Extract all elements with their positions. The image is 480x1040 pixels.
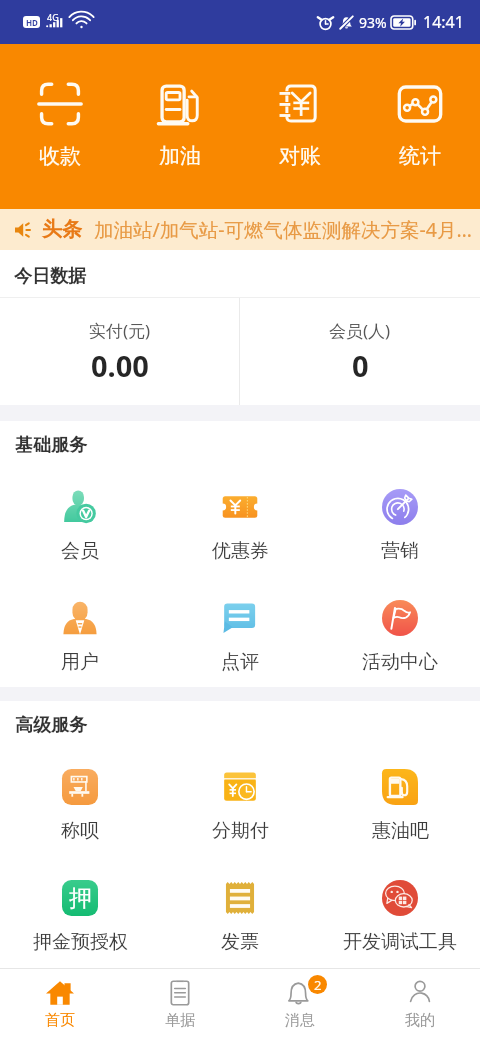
staticText: 加油 (159, 143, 201, 169)
staticText: 高级服务 (15, 714, 87, 737)
button[interactable]: 对账 (240, 44, 360, 209)
staticText: 头条 (42, 217, 82, 242)
staticText: 押金预授权 (33, 930, 128, 954)
button[interactable]: 用户 (0, 576, 160, 687)
button[interactable]: 统计 (360, 44, 480, 209)
button[interactable]: 首页 (0, 969, 120, 1040)
staticText: 开发调试工具 (343, 930, 457, 954)
button[interactable]: 押 (0, 856, 160, 967)
staticText: 活动中心 (362, 650, 438, 674)
button[interactable]: 头条 (0, 209, 480, 250)
button[interactable]: 会员(人) (240, 298, 480, 405)
button[interactable]: 开发调试工具 (320, 856, 480, 967)
staticText: 发票 (221, 930, 259, 954)
staticText: 优惠券 (212, 539, 269, 563)
staticText: 对账 (279, 143, 321, 169)
staticText: 用户 (61, 650, 99, 674)
staticText: 基础服务 (15, 434, 87, 457)
button[interactable]: 加油 (120, 44, 240, 209)
button[interactable]: 发票 (160, 856, 320, 967)
staticText: 0 (352, 346, 369, 385)
staticText: 押 (69, 884, 92, 913)
staticText: 会员(人) (329, 319, 391, 342)
button[interactable]: 分期付 (160, 745, 320, 856)
staticText: 0.00 (91, 346, 149, 385)
button[interactable]: 单据 (120, 969, 240, 1040)
staticText: 加油站/加气站-可燃气体监测解决方案-4月… (94, 216, 472, 243)
button[interactable]: 称呗 (0, 745, 160, 856)
staticText: 惠油吧 (372, 819, 429, 843)
staticText: 今日数据 (14, 265, 86, 288)
staticText: 93% (359, 13, 387, 32)
staticText: 会员 (61, 539, 99, 563)
button[interactable]: 我的 (360, 969, 480, 1040)
button[interactable]: 优惠券 (160, 465, 320, 576)
button[interactable]: 惠油吧 (320, 745, 480, 856)
staticText: 称呗 (61, 819, 99, 843)
staticText: 首页 (45, 1011, 75, 1030)
button[interactable]: 点评 (160, 576, 320, 687)
button[interactable]: 营销 (320, 465, 480, 576)
staticText: 点评 (221, 650, 259, 674)
staticText: 单据 (165, 1011, 195, 1030)
staticText: 营销 (381, 539, 419, 563)
staticText: 实付(元) (89, 319, 151, 342)
button[interactable]: 实付(元) (0, 298, 239, 405)
staticText: 统计 (399, 143, 441, 169)
button[interactable]: 收款 (0, 44, 120, 209)
staticText: 消息 (285, 1011, 315, 1030)
staticText: 14:41 (423, 11, 464, 33)
staticText: 4G (47, 11, 59, 23)
staticText: HD (26, 17, 38, 28)
button[interactable]: 活动中心 (320, 576, 480, 687)
staticText: 分期付 (212, 819, 269, 843)
button[interactable]: 会员 (0, 465, 160, 576)
button[interactable]: 2 (240, 969, 360, 1040)
staticText: 我的 (405, 1011, 435, 1030)
staticText: 2 (314, 976, 322, 994)
staticText: 收款 (39, 143, 81, 169)
